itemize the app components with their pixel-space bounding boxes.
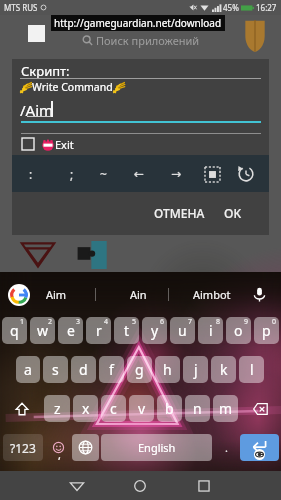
staticText: r <box>96 321 102 340</box>
staticText: Aim <box>46 287 67 302</box>
button[interactable]: Voice input <box>249 284 270 305</box>
button[interactable]: Select all <box>197 159 227 189</box>
staticText: 2 <box>48 317 53 327</box>
staticText: MTS RUS <box>4 2 38 13</box>
button[interactable]: t <box>114 317 139 344</box>
staticText: k <box>220 360 228 379</box>
staticText: OK <box>224 205 241 221</box>
button[interactable]: Delete <box>241 395 279 422</box>
staticText: 9 <box>244 317 249 327</box>
button[interactable]: w <box>30 317 55 344</box>
button[interactable]: e <box>58 317 83 344</box>
staticText: Aimbot <box>193 287 231 302</box>
button[interactable]: n <box>185 395 210 422</box>
staticText: Exit <box>55 137 74 152</box>
button[interactable]: ~ <box>88 158 119 189</box>
staticText: ~ <box>100 166 107 182</box>
staticText: a <box>24 360 32 379</box>
staticText: 16:27 <box>256 2 277 13</box>
button[interactable]: Back <box>66 475 88 497</box>
staticText: 45% <box>223 2 239 13</box>
button[interactable]: → <box>161 158 192 189</box>
button[interactable]: f <box>99 356 124 383</box>
button[interactable]: o <box>226 317 251 344</box>
staticText: b <box>165 399 174 418</box>
staticText: Скрипт: <box>21 62 70 80</box>
staticText: o <box>234 321 243 340</box>
staticText: /Aim <box>20 100 54 120</box>
staticText: x <box>82 399 90 418</box>
staticText: p <box>262 321 271 340</box>
staticText: Write Command <box>32 80 113 94</box>
button[interactable]: p <box>254 317 279 344</box>
staticText: → <box>171 167 182 181</box>
button[interactable]: ?123 <box>3 434 43 461</box>
button[interactable]: g <box>127 356 152 383</box>
staticText: : <box>29 166 33 182</box>
button[interactable]: OK <box>215 200 250 226</box>
button[interactable]: Aimbot <box>176 276 248 312</box>
staticText: i <box>209 321 213 340</box>
button[interactable]: Ain <box>112 276 164 312</box>
staticText: n <box>193 399 202 418</box>
staticText: s <box>52 360 59 379</box>
button[interactable]: Change language <box>72 434 99 461</box>
staticText: 6 <box>160 317 165 327</box>
button[interactable]: s <box>43 356 68 383</box>
button[interactable]: k <box>211 356 236 383</box>
staticText: e <box>67 321 75 340</box>
staticText: t <box>124 321 130 340</box>
button[interactable]: l <box>239 356 264 383</box>
button[interactable]: m <box>213 395 238 422</box>
button[interactable]: x <box>73 395 98 422</box>
button[interactable]: English <box>101 434 212 461</box>
button[interactable]: ОТМЕНА <box>145 200 214 226</box>
staticText: ОТМЕНА <box>154 205 205 221</box>
staticText: w <box>37 321 49 340</box>
button[interactable]: Enter <box>240 434 279 461</box>
button[interactable]: Exit <box>21 135 74 153</box>
staticText: ← <box>134 167 145 181</box>
staticText: 0 <box>272 317 277 327</box>
staticText: English <box>138 440 176 455</box>
button[interactable]: : <box>15 158 46 189</box>
staticText: g <box>135 360 144 379</box>
button[interactable]: h <box>155 356 180 383</box>
staticText: 3 <box>76 317 81 327</box>
button[interactable]: ← <box>124 158 155 189</box>
button[interactable]: Shift <box>2 395 41 422</box>
button[interactable]: i <box>198 317 223 344</box>
staticText: q <box>10 321 19 340</box>
button[interactable]: v <box>129 395 154 422</box>
button[interactable]: History <box>231 159 261 189</box>
button[interactable]: b <box>157 395 182 422</box>
button[interactable]: d <box>71 356 96 383</box>
staticText: z <box>54 399 61 418</box>
button[interactable]: z <box>44 395 70 422</box>
button[interactable]: Period <box>214 434 238 461</box>
staticText: , <box>58 447 61 462</box>
button[interactable]: y <box>142 317 167 344</box>
staticText: ?123 <box>10 440 36 456</box>
button[interactable]: c <box>101 395 126 422</box>
button[interactable]: Recents <box>193 475 215 497</box>
staticText: y <box>151 321 159 340</box>
button[interactable]: j <box>183 356 208 383</box>
staticText: c <box>110 399 117 418</box>
button[interactable]: u <box>170 317 195 344</box>
staticText: ; <box>70 166 74 182</box>
button[interactable]: a <box>16 356 40 383</box>
button[interactable]: App shield <box>244 20 266 52</box>
button[interactable]: ; <box>56 158 87 189</box>
staticText: 4 <box>104 317 109 327</box>
button[interactable]: Google <box>7 283 30 306</box>
button[interactable]: Emoji <box>45 434 71 461</box>
button[interactable]: q <box>2 317 27 344</box>
button[interactable]: r <box>86 317 111 344</box>
button[interactable]: Aim <box>36 276 76 312</box>
staticText: m <box>219 399 233 418</box>
staticText: Поиск приложений <box>96 33 200 48</box>
staticText: Ain <box>130 287 147 302</box>
button[interactable]: Home <box>129 475 151 497</box>
